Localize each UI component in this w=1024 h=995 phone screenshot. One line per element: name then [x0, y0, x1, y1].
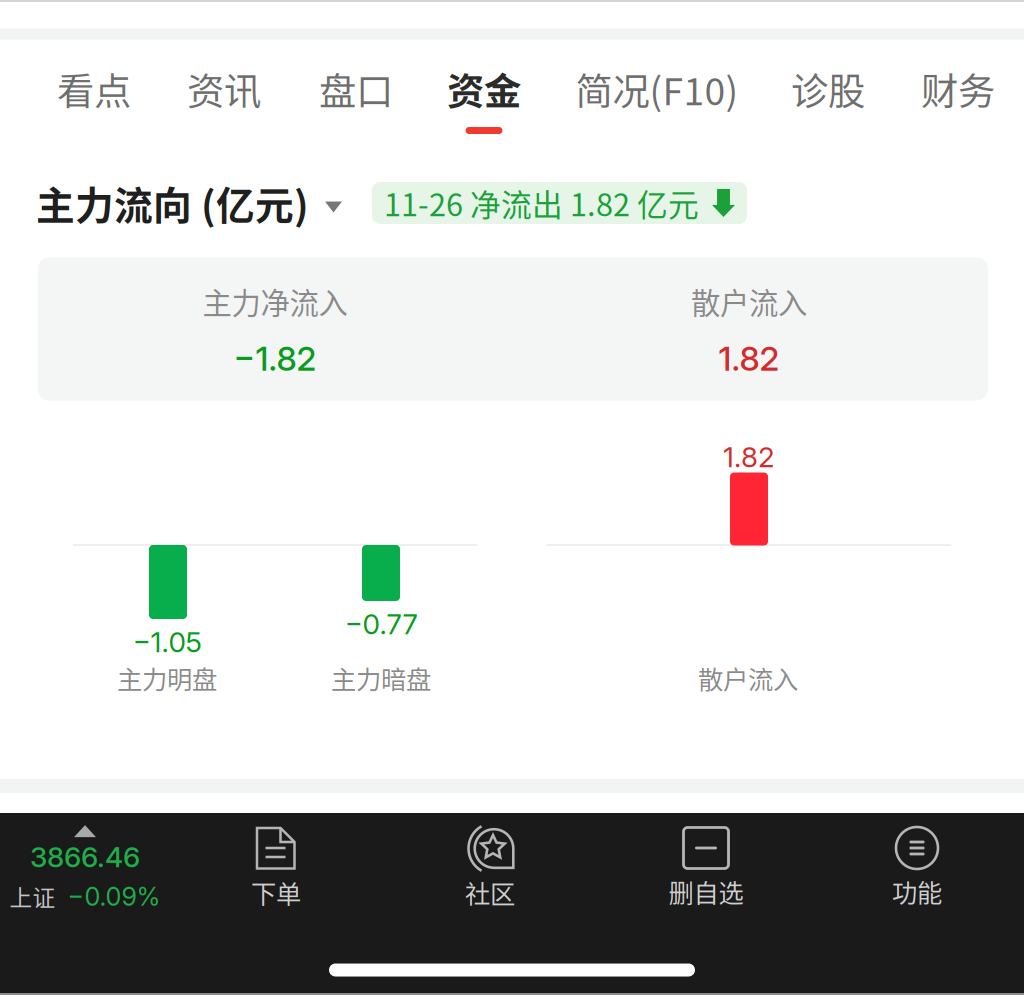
button[interactable]: 主力流向 (亿元)	[36, 175, 342, 231]
staticText: 简况(F10)	[575, 62, 738, 116]
staticText: 功能	[892, 873, 942, 910]
staticText: 3866.46	[30, 840, 140, 874]
staticText: 1.82	[718, 339, 779, 379]
button[interactable]: 看点	[0, 43, 189, 141]
staticText: 主力暗盘	[331, 660, 431, 696]
staticText: 下单	[251, 874, 301, 911]
button[interactable]: 删自选	[611, 826, 801, 918]
staticText: 散户流入	[691, 280, 807, 323]
staticText: 看点	[57, 62, 131, 116]
staticText: 资金	[447, 62, 521, 116]
staticText: −0.77	[344, 607, 417, 641]
staticText: 1.82	[723, 440, 775, 474]
staticText: −1.82	[233, 339, 316, 379]
button[interactable]: 资讯	[129, 43, 319, 141]
button[interactable]: 11-26 净流出 1.82 亿元	[372, 182, 747, 224]
staticText: 诊股	[791, 62, 865, 116]
staticText: 上证	[9, 880, 55, 913]
button[interactable]: 社区	[395, 826, 585, 918]
button[interactable]: 盘口	[261, 43, 451, 141]
staticText: 盘口	[319, 62, 393, 116]
button[interactable]: 下单	[181, 826, 371, 918]
staticText: 社区	[465, 874, 515, 911]
staticText: 散户流入	[698, 660, 798, 696]
button[interactable]: 资金	[389, 43, 579, 141]
button[interactable]: 诊股	[733, 43, 923, 141]
button[interactable]: 3866.46	[0, 816, 175, 922]
staticText: 财务	[921, 62, 995, 116]
staticText: −0.09%	[67, 881, 160, 912]
staticText: 资讯	[187, 62, 261, 116]
button[interactable]: 简况(F10)	[562, 43, 752, 141]
button[interactable]: 财务	[863, 43, 1024, 141]
button[interactable]: 功能	[822, 826, 1012, 918]
staticText: 删自选	[668, 873, 743, 910]
staticText: 主力流向 (亿元)	[36, 175, 309, 231]
staticText: 主力明盘	[117, 660, 217, 696]
staticText: −1.05	[132, 625, 201, 659]
staticText: 11-26 净流出 1.82 亿元	[384, 181, 699, 225]
staticText: 主力净流入	[202, 280, 347, 323]
